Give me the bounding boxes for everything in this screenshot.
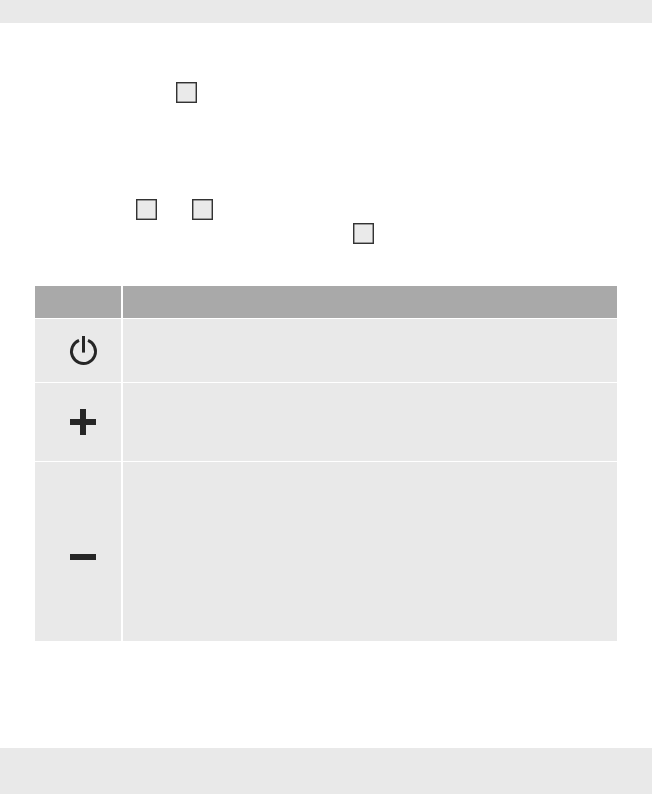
button[interactable]: Volume up: [35, 383, 121, 461]
button[interactable]: Image: [192, 199, 213, 220]
button[interactable]: Volume down: [35, 462, 121, 641]
button[interactable]: Image: [353, 223, 374, 244]
button[interactable]: Power: [35, 319, 121, 382]
button[interactable]: Image: [176, 82, 197, 103]
button[interactable]: Image: [136, 199, 157, 220]
